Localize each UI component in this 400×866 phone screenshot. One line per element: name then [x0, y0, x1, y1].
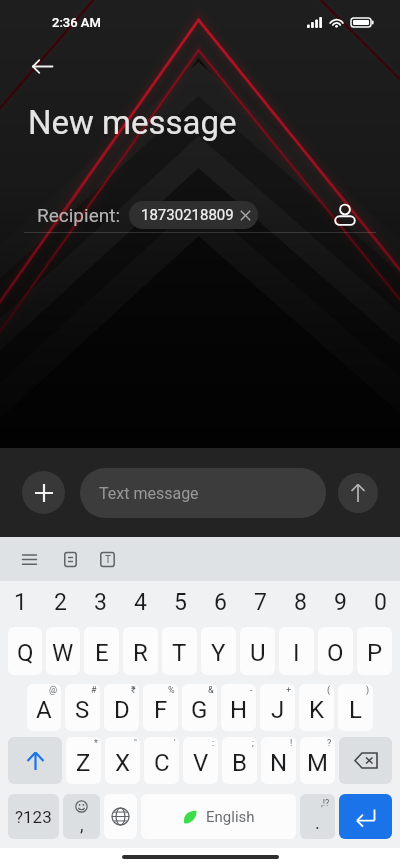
- button[interactable]: 3: [80, 581, 120, 627]
- staticText: H: [230, 696, 248, 724]
- button[interactable]: 1: [0, 581, 40, 627]
- button[interactable]: 8: [280, 581, 320, 627]
- staticText: *: [94, 738, 98, 749]
- button[interactable]: Enter: [339, 794, 392, 839]
- staticText: +: [286, 685, 292, 696]
- button[interactable]: A: [27, 684, 61, 731]
- button[interactable]: 6: [200, 581, 240, 627]
- button[interactable]: F: [143, 684, 178, 731]
- staticText: L: [349, 696, 362, 724]
- button[interactable]: K: [299, 684, 334, 731]
- staticText: 1: [14, 589, 27, 616]
- button[interactable]: Shift: [8, 737, 62, 784]
- staticText: 2:36 AM: [52, 15, 101, 30]
- staticText: ,: [80, 814, 84, 835]
- staticText: (: [327, 685, 331, 696]
- button[interactable]: Backspace: [339, 737, 392, 784]
- staticText: 18730218809: [141, 206, 234, 224]
- button[interactable]: English: [141, 794, 296, 839]
- button[interactable]: X: [105, 737, 140, 784]
- button[interactable]: R: [123, 627, 158, 675]
- button[interactable]: ,: [63, 794, 100, 839]
- staticText: ₹: [131, 685, 136, 696]
- button[interactable]: W: [46, 627, 80, 675]
- staticText: 8: [294, 589, 307, 616]
- staticText: P: [367, 639, 383, 667]
- button[interactable]: P: [357, 627, 392, 675]
- staticText: -: [250, 685, 253, 696]
- button[interactable]: Add attachment: [22, 471, 65, 514]
- button[interactable]: Text editing: [92, 544, 122, 574]
- button[interactable]: 2: [40, 581, 80, 627]
- staticText: 7: [254, 589, 267, 616]
- button[interactable]: H: [221, 684, 256, 731]
- staticText: S: [75, 696, 90, 724]
- staticText: :: [212, 738, 215, 749]
- button[interactable]: ?123: [8, 794, 59, 839]
- staticText: !: [290, 738, 293, 749]
- button[interactable]: E: [84, 627, 119, 675]
- button[interactable]: 18730218809: [129, 201, 258, 229]
- staticText: R: [133, 639, 148, 667]
- staticText: ?123: [15, 807, 52, 827]
- button[interactable]: Change language: [104, 794, 137, 839]
- button[interactable]: O: [318, 627, 353, 675]
- button[interactable]: Text message: [80, 468, 326, 518]
- staticText: I: [293, 639, 300, 667]
- button[interactable]: 7: [240, 581, 280, 627]
- staticText: ?: [327, 738, 332, 749]
- staticText: 5: [174, 589, 187, 616]
- staticText: U: [250, 639, 266, 667]
- staticText: K: [309, 696, 325, 724]
- button[interactable]: 9: [320, 581, 360, 627]
- staticText: 6: [214, 589, 227, 616]
- staticText: T: [172, 639, 187, 667]
- button[interactable]: Choose contact: [328, 198, 362, 232]
- staticText: @: [49, 685, 58, 696]
- button[interactable]: B: [222, 737, 257, 784]
- button[interactable]: Q: [8, 627, 42, 675]
- button[interactable]: M: [300, 737, 335, 784]
- button[interactable]: C: [144, 737, 179, 784]
- button[interactable]: 5: [160, 581, 200, 627]
- staticText: W: [52, 639, 74, 667]
- staticText: M: [307, 749, 328, 777]
- button[interactable]: Y: [201, 627, 236, 675]
- staticText: E: [95, 639, 109, 667]
- staticText: Recipient:: [37, 204, 121, 226]
- button[interactable]: I: [279, 627, 314, 675]
- button[interactable]: Back: [22, 46, 62, 86]
- button[interactable]: U: [240, 627, 275, 675]
- staticText: Q: [17, 639, 34, 667]
- staticText: A: [36, 696, 52, 724]
- staticText: C: [154, 749, 170, 777]
- staticText: X: [115, 749, 131, 777]
- button[interactable]: J: [260, 684, 295, 731]
- button[interactable]: ,!?: [300, 794, 335, 839]
- staticText: J: [271, 696, 285, 724]
- staticText: 0: [374, 589, 387, 616]
- staticText: G: [191, 696, 208, 724]
- staticText: English: [206, 808, 255, 826]
- staticText: 9: [334, 589, 347, 616]
- button[interactable]: G: [182, 684, 217, 731]
- button[interactable]: Menu: [14, 544, 44, 574]
- button[interactable]: D: [104, 684, 139, 731]
- button[interactable]: 0: [360, 581, 400, 627]
- button[interactable]: L: [338, 684, 373, 731]
- staticText: ': [174, 738, 176, 749]
- staticText: Y: [211, 639, 226, 667]
- button[interactable]: S: [65, 684, 100, 731]
- staticText: D: [114, 696, 130, 724]
- staticText: 2: [54, 589, 67, 616]
- button[interactable]: Z: [66, 737, 101, 784]
- button[interactable]: V: [183, 737, 218, 784]
- staticText: &: [208, 685, 214, 696]
- staticText: ): [366, 685, 370, 696]
- button[interactable]: Clipboard: [55, 544, 85, 574]
- button[interactable]: T: [162, 627, 197, 675]
- staticText: B: [232, 749, 247, 777]
- button[interactable]: 4: [120, 581, 160, 627]
- button[interactable]: Send: [338, 473, 378, 513]
- button[interactable]: N: [261, 737, 296, 784]
